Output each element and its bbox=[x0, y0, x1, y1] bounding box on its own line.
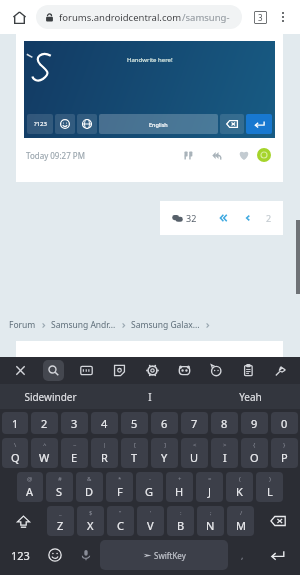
button[interactable]: ~ bbox=[61, 438, 88, 468]
button[interactable]: Settings bbox=[136, 357, 168, 384]
button[interactable]: First page bbox=[215, 210, 231, 226]
staticText: S bbox=[56, 484, 63, 499]
button[interactable]: ?123 bbox=[27, 114, 53, 134]
button[interactable]: > bbox=[211, 438, 238, 468]
button[interactable]: 123 bbox=[2, 540, 39, 570]
staticText: + bbox=[178, 475, 182, 483]
staticText: * bbox=[118, 475, 122, 483]
button[interactable]: ; bbox=[197, 506, 224, 536]
staticText: 2 bbox=[266, 212, 272, 224]
staticText: { bbox=[253, 441, 256, 449]
button[interactable]: : bbox=[167, 506, 194, 536]
button[interactable]: ] bbox=[151, 438, 178, 468]
button[interactable]: More options bbox=[272, 6, 294, 28]
button[interactable]: Backspace bbox=[257, 506, 298, 536]
staticText: 6 bbox=[161, 416, 168, 431]
button[interactable]: ( bbox=[226, 472, 253, 502]
button[interactable]: Close bbox=[4, 357, 37, 384]
button[interactable]: Voice input bbox=[71, 540, 100, 570]
staticText: ' bbox=[150, 509, 152, 517]
button[interactable]: Emoji bbox=[39, 540, 71, 570]
button[interactable]: Enter bbox=[257, 540, 298, 570]
button[interactable]: Samsung Galax... bbox=[131, 319, 200, 331]
button[interactable]: - bbox=[136, 472, 163, 502]
staticText: > bbox=[223, 441, 227, 449]
staticText: L bbox=[267, 484, 273, 499]
button[interactable]: = bbox=[196, 472, 223, 502]
staticText: I bbox=[223, 450, 227, 465]
button[interactable]: English bbox=[99, 114, 218, 134]
staticText: ~ bbox=[73, 441, 77, 449]
button[interactable]: 3 bbox=[61, 412, 88, 434]
button[interactable]: $ bbox=[77, 506, 104, 536]
button[interactable]: Comments bbox=[171, 212, 198, 224]
button[interactable]: Enter bbox=[246, 114, 272, 134]
staticText: \ bbox=[14, 441, 17, 449]
button[interactable]: Comma bbox=[228, 540, 257, 570]
staticText: 0 bbox=[281, 416, 288, 431]
button[interactable]: 6 bbox=[151, 412, 178, 434]
staticText: I bbox=[148, 390, 152, 404]
button[interactable]: | bbox=[91, 438, 118, 468]
button[interactable]: _ bbox=[47, 506, 74, 536]
button[interactable]: Emoji bbox=[168, 357, 200, 384]
button[interactable]: Home bbox=[6, 4, 32, 30]
button[interactable] bbox=[55, 114, 75, 134]
button[interactable]: < bbox=[181, 438, 208, 468]
button[interactable]: Yeah bbox=[200, 384, 300, 409]
button[interactable]: # bbox=[46, 472, 73, 502]
button[interactable]: Sidewinder bbox=[0, 384, 100, 409]
staticText: H bbox=[175, 484, 184, 499]
button[interactable]: * bbox=[106, 472, 133, 502]
button[interactable]: 9 bbox=[241, 412, 268, 434]
button[interactable]: 1 bbox=[2, 412, 28, 434]
staticText: 5 bbox=[131, 416, 138, 431]
staticText: ?123 bbox=[34, 120, 47, 128]
button[interactable]: 5 bbox=[121, 412, 148, 434]
button[interactable]: 8 bbox=[211, 412, 238, 434]
button[interactable]: 2 bbox=[31, 412, 58, 434]
button[interactable]: Forum bbox=[9, 319, 36, 331]
button[interactable]: I bbox=[100, 384, 200, 409]
button[interactable]: Reply bbox=[206, 145, 226, 165]
button[interactable]: 0 bbox=[271, 412, 298, 434]
button[interactable]: { bbox=[241, 438, 268, 468]
staticText: 9 bbox=[251, 416, 258, 431]
button[interactable]: Stickers bbox=[103, 357, 136, 384]
button[interactable] bbox=[220, 114, 244, 134]
staticText: / bbox=[240, 509, 243, 517]
staticText: forums.androidcentral.com bbox=[59, 11, 182, 24]
button[interactable]: Search bbox=[37, 357, 70, 384]
button[interactable]: GIF bbox=[70, 357, 103, 384]
button[interactable]: Shift bbox=[2, 506, 44, 536]
button[interactable]: ) bbox=[256, 472, 283, 502]
button[interactable]: @ bbox=[17, 472, 43, 502]
button[interactable]: Like bbox=[234, 145, 254, 165]
button[interactable]: Quote bbox=[178, 145, 198, 165]
button[interactable]: Space bbox=[100, 540, 228, 570]
button[interactable]: ' bbox=[137, 506, 164, 536]
button[interactable]: 4 bbox=[91, 412, 118, 434]
button[interactable]: + bbox=[166, 472, 193, 502]
button[interactable]: Previous page bbox=[240, 210, 256, 226]
button[interactable]: [ bbox=[121, 438, 148, 468]
staticText: 123 bbox=[11, 548, 30, 563]
button[interactable]: Tabs: 3 bbox=[248, 5, 272, 29]
button[interactable]: Samsung Andr... bbox=[51, 319, 116, 331]
staticText: G bbox=[145, 484, 154, 499]
staticText: & bbox=[87, 475, 92, 483]
button[interactable]: Reactions bbox=[257, 148, 271, 162]
staticText: B bbox=[177, 518, 185, 533]
button[interactable]: forums.androidcentral.com bbox=[36, 5, 242, 29]
button[interactable]: } bbox=[271, 438, 298, 468]
button[interactable]: 7 bbox=[181, 412, 208, 434]
button[interactable]: ^ bbox=[31, 438, 58, 468]
button[interactable]: & bbox=[76, 472, 103, 502]
button[interactable]: \ bbox=[2, 438, 28, 468]
button[interactable]: Clipboard bbox=[232, 357, 264, 384]
button[interactable]: Avatar stickers bbox=[200, 357, 232, 384]
button[interactable] bbox=[77, 114, 97, 134]
button[interactable]: " bbox=[107, 506, 134, 536]
button[interactable]: / bbox=[227, 506, 254, 536]
button[interactable]: Pin toolbar bbox=[264, 357, 296, 384]
